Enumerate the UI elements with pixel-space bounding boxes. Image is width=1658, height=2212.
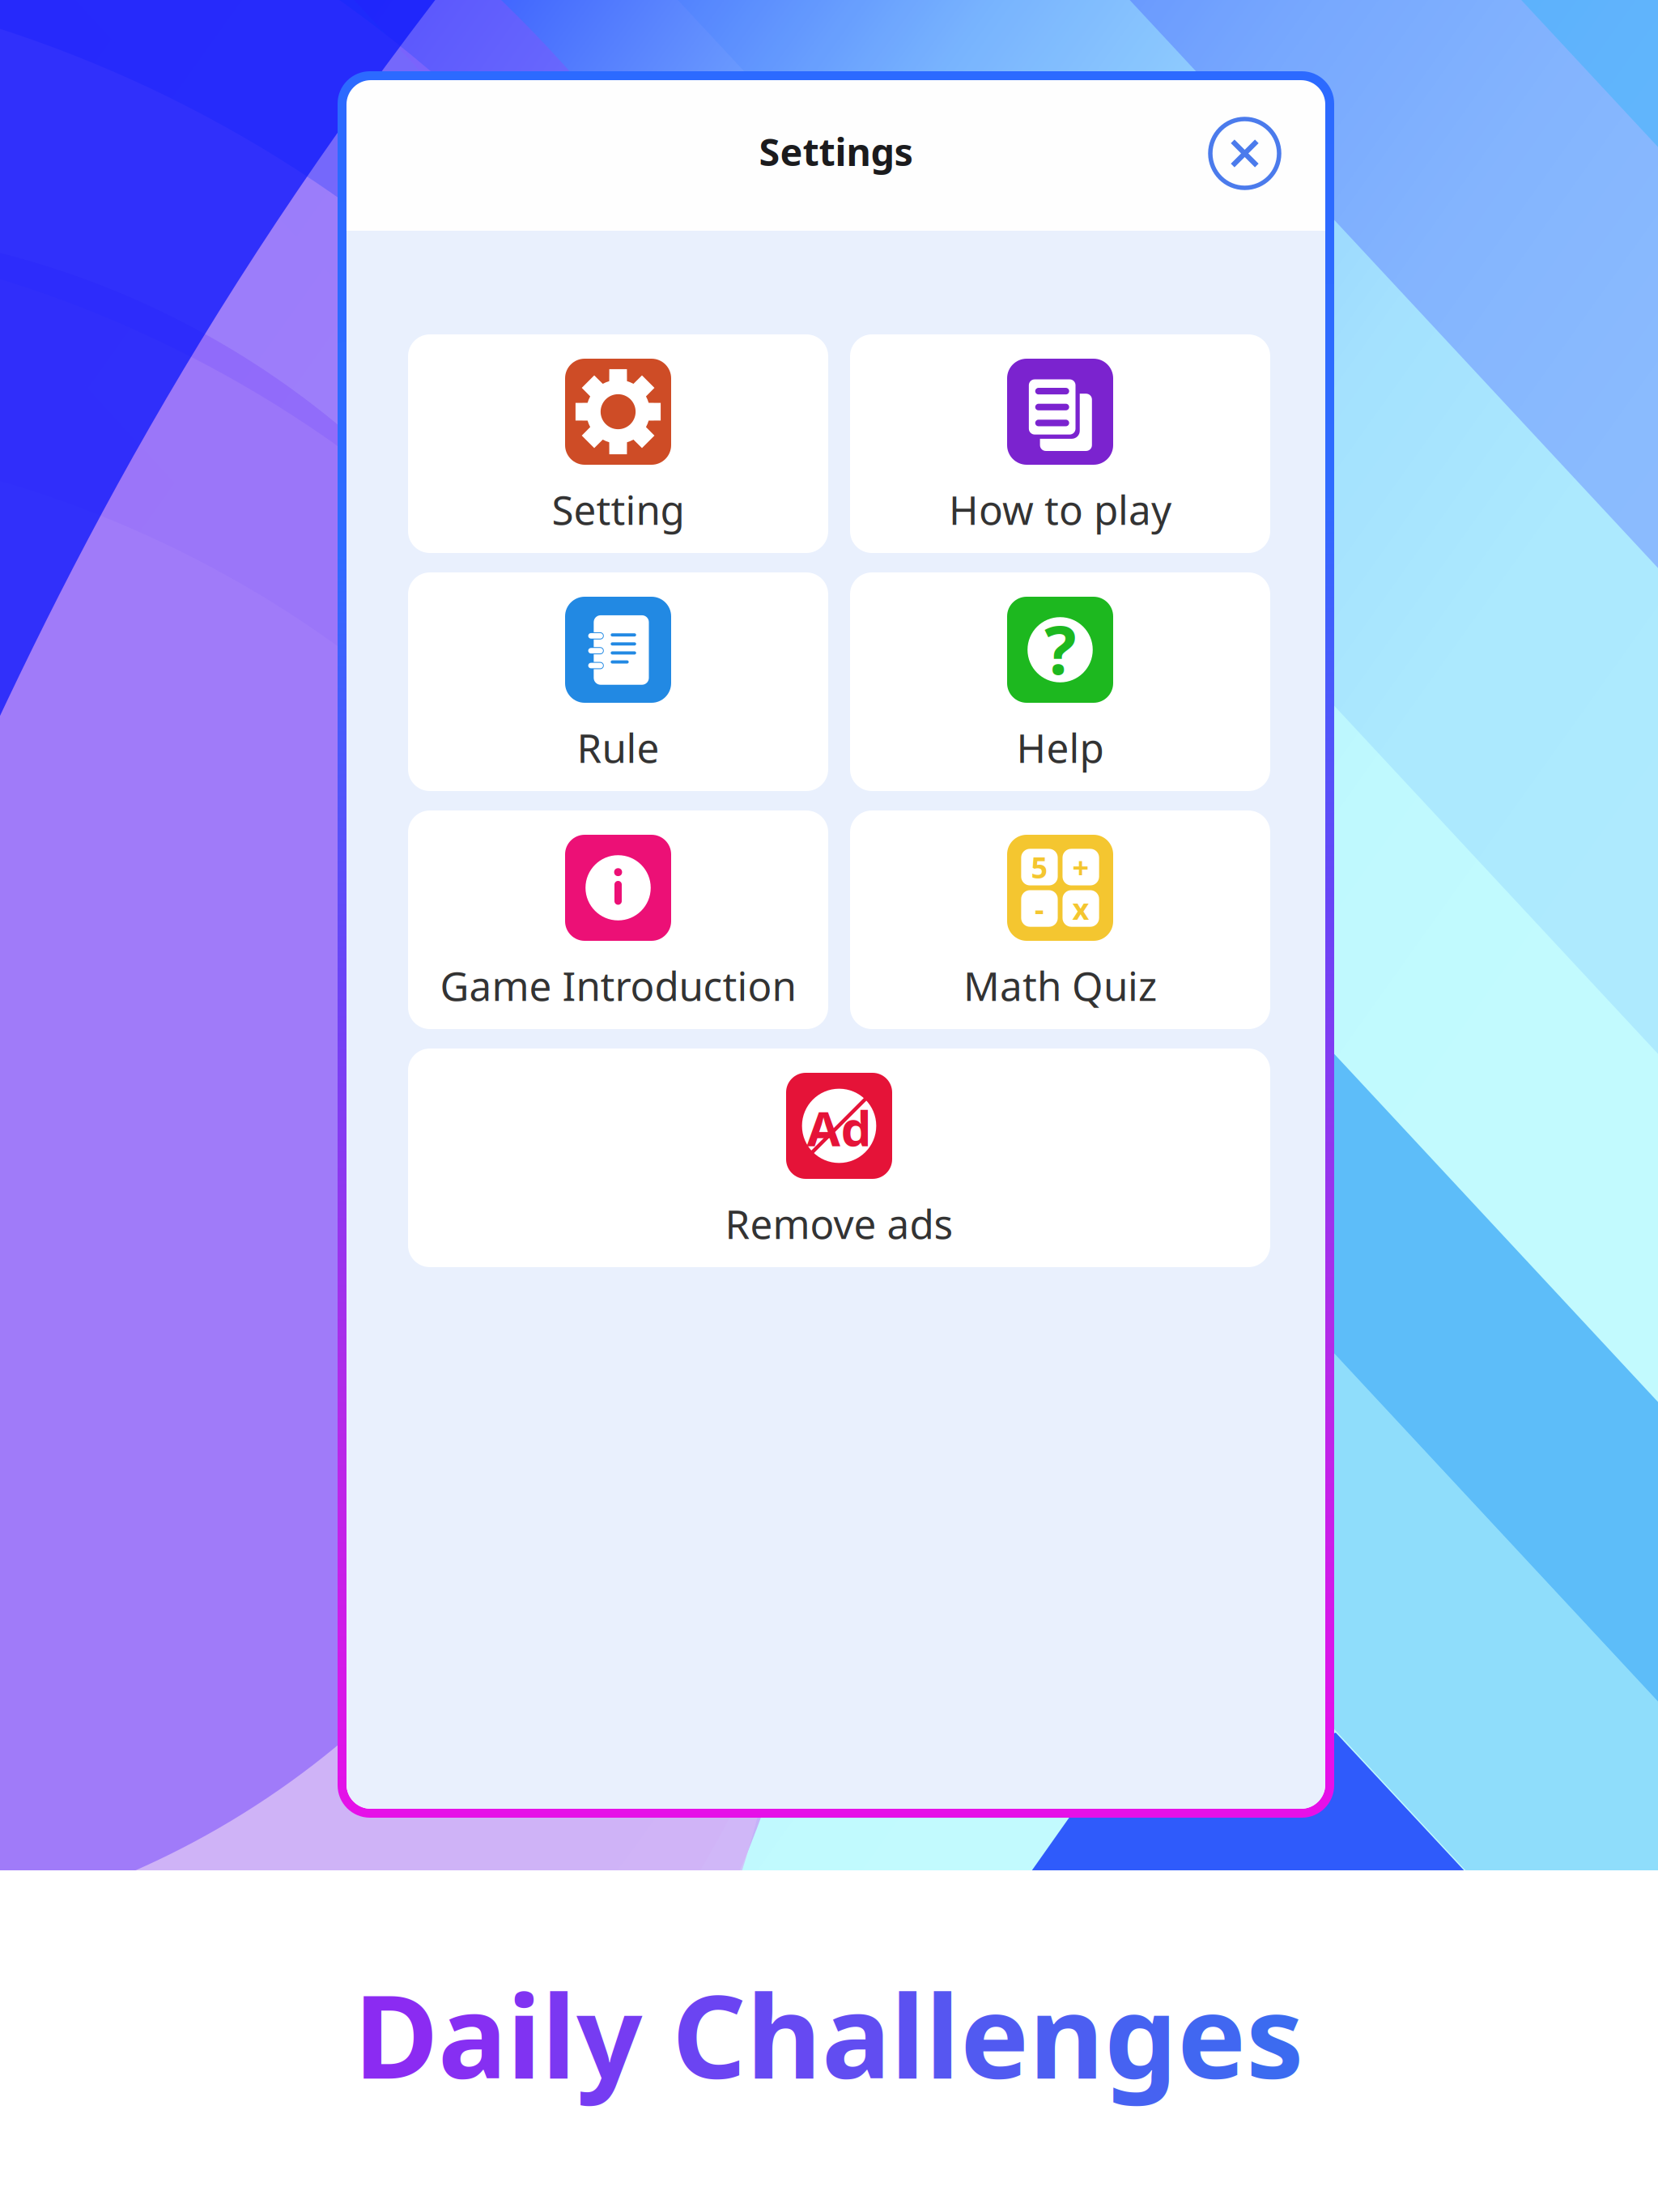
staticText: x: [1072, 889, 1089, 928]
staticText: Math Quiz: [963, 959, 1157, 1012]
button[interactable]: 5: [850, 810, 1270, 1029]
staticText: How to play: [949, 483, 1171, 536]
staticText: -: [1035, 889, 1044, 928]
button[interactable]: Setting: [408, 334, 828, 553]
staticText: Help: [1016, 721, 1104, 774]
staticText: 5: [1031, 848, 1048, 887]
button[interactable]: How to play: [850, 334, 1270, 553]
staticText: C: [672, 1957, 746, 2111]
staticText: s: [1246, 1957, 1304, 2111]
staticText: h: [746, 1957, 822, 2111]
staticText: Settings: [759, 126, 913, 177]
staticText: D: [354, 1957, 438, 2111]
staticText: l: [925, 1957, 960, 2111]
staticText: ?: [1044, 604, 1076, 693]
staticText: l: [542, 1957, 576, 2111]
staticText: a: [822, 1957, 891, 2111]
staticText: g: [1104, 1957, 1177, 2111]
button[interactable]: ?: [850, 572, 1270, 791]
staticText: Setting: [552, 483, 684, 536]
staticText: a: [438, 1957, 507, 2111]
staticText: Rule: [577, 721, 659, 774]
staticText: Game Introduction: [440, 959, 796, 1012]
staticText: n: [1029, 1957, 1104, 2111]
button[interactable]: Close: [1210, 119, 1279, 188]
staticText: e: [1177, 1957, 1246, 2111]
staticText: e: [960, 1957, 1029, 2111]
button[interactable]: D: [0, 1957, 1658, 2111]
button[interactable]: Rule: [408, 572, 828, 791]
button[interactable]: Ad: [408, 1049, 1270, 1267]
staticText: l: [891, 1957, 925, 2111]
staticText: Remove ads: [725, 1197, 953, 1250]
button[interactable]: Game Introduction: [408, 810, 828, 1029]
staticText: Ad: [807, 1095, 872, 1160]
staticText: y: [576, 1957, 642, 2111]
staticText: +: [1072, 848, 1089, 887]
staticText: i: [507, 1957, 542, 2111]
